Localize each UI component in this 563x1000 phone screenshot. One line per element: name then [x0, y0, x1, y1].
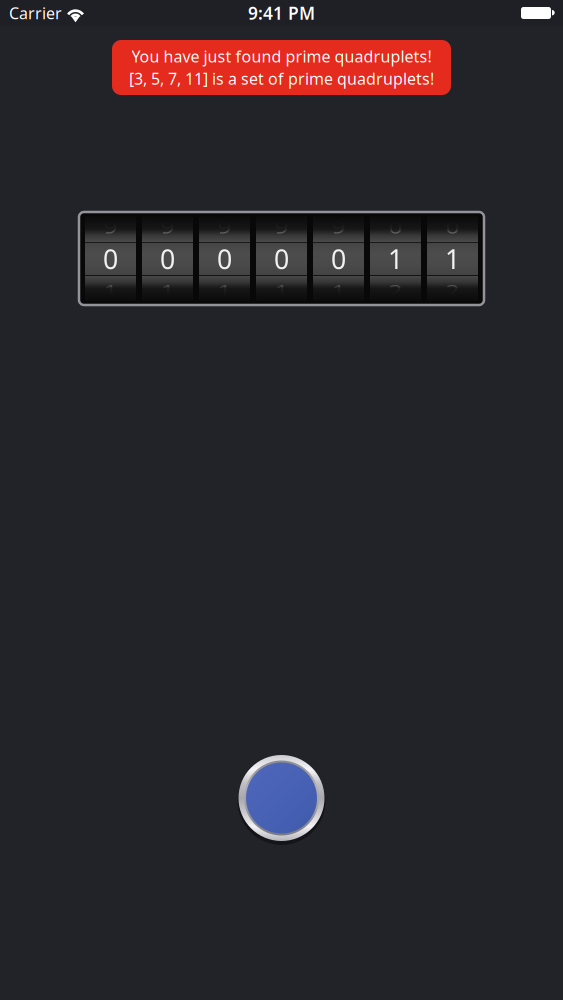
staticText: 2	[388, 273, 403, 308]
staticText: 9	[160, 209, 175, 245]
staticText: 1	[160, 273, 175, 308]
staticText: 1	[103, 273, 118, 308]
staticText: 9	[274, 209, 289, 245]
staticText: 9	[331, 209, 346, 245]
staticText: 1	[274, 273, 289, 308]
staticText: 0	[445, 209, 460, 245]
staticText: 0	[388, 209, 403, 245]
staticText: 1	[331, 273, 346, 308]
staticText: Carrier	[9, 2, 62, 24]
staticText: 0	[274, 241, 289, 277]
staticText: 9:41 PM	[248, 1, 315, 24]
staticText: 9	[103, 209, 118, 245]
button[interactable]: You have just found prime quadruplets!	[112, 40, 451, 95]
staticText: 9	[217, 209, 232, 245]
staticText: 1	[388, 241, 403, 277]
staticText: 1	[217, 273, 232, 308]
staticText: [3, 5, 7, 11] is a set of prime quadrupl…	[129, 68, 434, 89]
staticText: 1	[445, 241, 460, 277]
staticText: 0	[160, 241, 175, 277]
button[interactable]: Increment counter	[233, 750, 329, 846]
staticText: 2	[445, 273, 460, 308]
staticText: 0	[217, 241, 232, 277]
staticText: 0	[331, 241, 346, 277]
staticText: 0	[103, 241, 118, 277]
staticText: You have just found prime quadruplets!	[131, 46, 431, 67]
